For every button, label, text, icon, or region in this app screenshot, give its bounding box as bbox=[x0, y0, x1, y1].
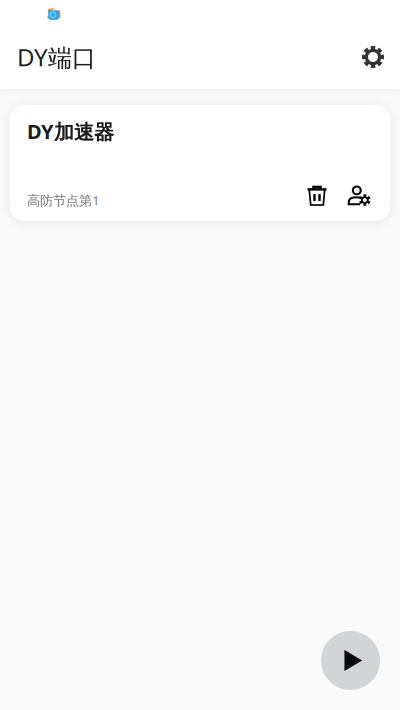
button[interactable]: Account settings bbox=[344, 181, 374, 211]
button[interactable]: DY加速器 bbox=[10, 105, 390, 221]
staticText: DY端口 bbox=[17, 41, 96, 73]
staticText: 高防节点第1 bbox=[27, 191, 100, 209]
button[interactable]: Delete bbox=[302, 181, 332, 211]
staticText: DY加速器 bbox=[27, 118, 114, 145]
button[interactable]: Settings bbox=[351, 35, 395, 79]
button[interactable]: Start bbox=[321, 631, 380, 690]
